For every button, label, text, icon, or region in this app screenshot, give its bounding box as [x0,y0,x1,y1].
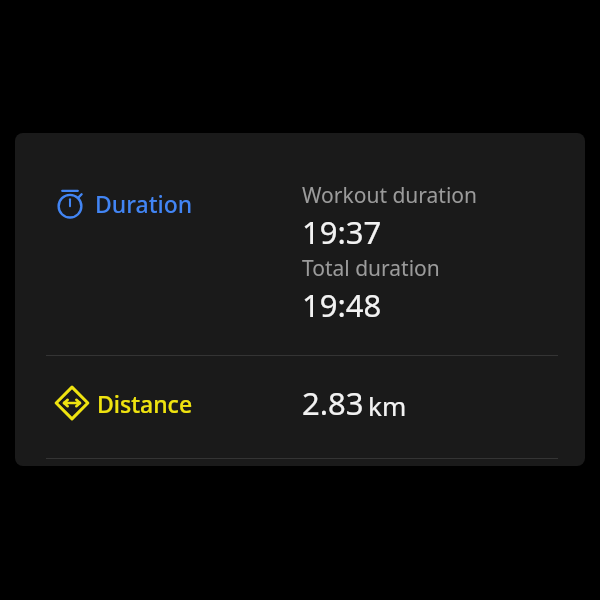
staticText: km [368,388,407,423]
staticText: 19:37 [302,211,382,253]
staticText: Total duration [302,254,440,283]
other: Distance [54,385,90,421]
staticText: 19:48 [302,284,382,326]
other: Duration [54,187,86,219]
staticText: Duration [95,188,193,219]
button[interactable]: Duration [15,133,585,355]
button[interactable]: Distance [15,356,585,458]
staticText: Workout duration [302,181,478,210]
staticText: Distance [97,388,193,419]
staticText: 2.83 [302,382,364,424]
